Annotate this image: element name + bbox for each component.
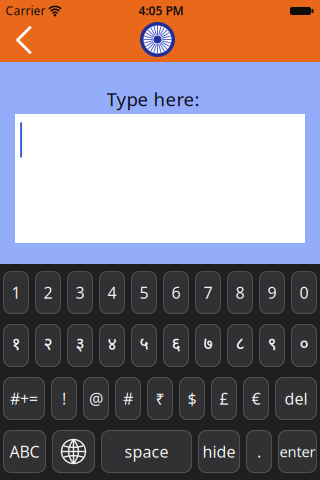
staticText: 1 — [11, 282, 20, 303]
button[interactable]: 9 — [259, 271, 285, 314]
staticText: २ — [43, 334, 52, 357]
button[interactable]: 2 — [35, 271, 61, 314]
staticText: 7 — [203, 282, 212, 303]
button[interactable]: ! — [51, 377, 77, 420]
button[interactable]: ९ — [259, 324, 285, 367]
staticText: १ — [11, 334, 20, 357]
button[interactable]: € — [243, 377, 269, 420]
staticText: Type here: — [106, 87, 199, 111]
button[interactable]: Text input — [15, 114, 305, 243]
staticText: ₹ — [155, 388, 164, 409]
staticText: # — [123, 388, 133, 409]
staticText: $ — [187, 388, 196, 409]
staticText: 0 — [299, 282, 308, 303]
staticText: ४ — [107, 334, 116, 357]
staticText: #+= — [10, 388, 38, 409]
button[interactable]: del — [275, 377, 317, 420]
staticText: ० — [299, 334, 308, 357]
button[interactable]: £ — [211, 377, 237, 420]
button[interactable]: #+= — [3, 377, 45, 420]
staticText: 3 — [75, 282, 84, 303]
staticText: ७ — [203, 334, 212, 357]
button[interactable]: Back — [13, 26, 39, 54]
button[interactable]: @ — [83, 377, 109, 420]
staticText: 8 — [235, 282, 244, 303]
staticText: 4:05 PM — [138, 2, 183, 18]
staticText: € — [251, 388, 260, 409]
button[interactable]: 5 — [131, 271, 157, 314]
button[interactable]: enter — [278, 430, 317, 473]
button[interactable]: २ — [35, 324, 61, 367]
button[interactable]: 3 — [67, 271, 93, 314]
button[interactable]: . — [246, 430, 272, 473]
button[interactable]: 1 — [3, 271, 29, 314]
staticText: space — [124, 441, 168, 462]
staticText: ८ — [235, 334, 244, 357]
button[interactable]: hide — [198, 430, 240, 473]
button[interactable]: ६ — [163, 324, 189, 367]
staticText: 5 — [139, 282, 148, 303]
button[interactable]: ४ — [99, 324, 125, 367]
staticText: ५ — [139, 334, 148, 357]
button[interactable]: 7 — [195, 271, 221, 314]
staticText: hide — [202, 441, 235, 462]
staticText: ABC — [9, 441, 39, 462]
button[interactable]: 6 — [163, 271, 189, 314]
staticText: ! — [62, 388, 66, 409]
staticText: 6 — [171, 282, 180, 303]
staticText: 9 — [267, 282, 276, 303]
button[interactable]: 8 — [227, 271, 253, 314]
button[interactable]: ८ — [227, 324, 253, 367]
staticText: 2 — [43, 282, 52, 303]
button[interactable]: $ — [179, 377, 205, 420]
button[interactable]: १ — [3, 324, 29, 367]
staticText: enter — [279, 442, 315, 461]
button[interactable]: ५ — [131, 324, 157, 367]
staticText: ६ — [171, 334, 180, 357]
button[interactable]: 4 — [99, 271, 125, 314]
staticText: del — [284, 388, 307, 409]
staticText: Carrier — [5, 2, 45, 18]
staticText: ३ — [75, 334, 84, 357]
button[interactable]: ७ — [195, 324, 221, 367]
button[interactable]: ABC — [3, 430, 46, 473]
button[interactable]: ० — [291, 324, 317, 367]
button[interactable]: ३ — [67, 324, 93, 367]
button[interactable]: # — [115, 377, 141, 420]
button[interactable]: ₹ — [147, 377, 173, 420]
staticText: @ — [89, 388, 103, 409]
staticText: . — [257, 441, 261, 462]
staticText: ९ — [267, 334, 276, 357]
button[interactable]: space — [101, 430, 192, 473]
staticText: 4 — [107, 282, 116, 303]
staticText: £ — [219, 388, 228, 409]
button[interactable]: 0 — [291, 271, 317, 314]
button[interactable]: Next keyboard — [52, 430, 95, 473]
